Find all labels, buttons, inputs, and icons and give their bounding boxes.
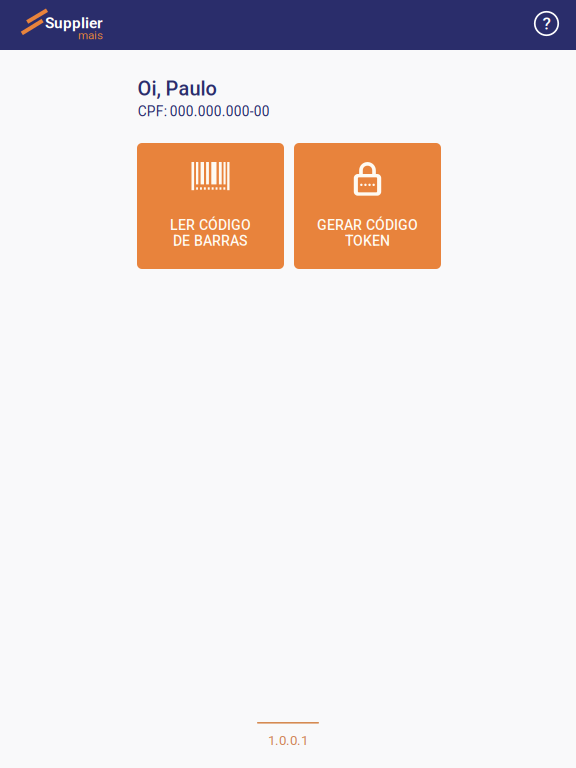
button[interactable]: GERAR CÓDIGO <box>294 143 441 269</box>
staticText: CPF: 000.000.000-00 <box>138 103 270 120</box>
staticText: ? <box>542 13 550 34</box>
staticText: 1.0.0.1 <box>268 733 308 748</box>
staticText: DE BARRAS <box>173 233 248 249</box>
button[interactable]: Help <box>529 6 563 40</box>
button[interactable]: LER CÓDIGO <box>137 143 284 269</box>
staticText: Oi, Paulo <box>138 77 217 100</box>
staticText: GERAR CÓDIGO <box>317 217 418 234</box>
staticText: Supplier <box>45 14 103 32</box>
staticText: TOKEN <box>345 233 390 249</box>
staticText: mais <box>78 28 103 42</box>
staticText: LER CÓDIGO <box>170 217 251 234</box>
